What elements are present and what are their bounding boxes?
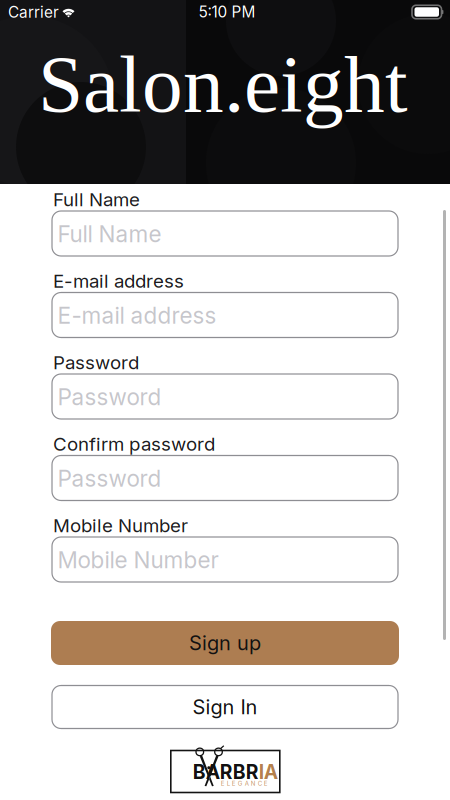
staticText: E-mail address (57, 302, 216, 329)
staticText: Sign In (192, 695, 257, 719)
staticText: Salon.eight (38, 39, 408, 129)
staticText: Full Name (53, 188, 140, 211)
staticText: BARBR (193, 760, 259, 784)
staticText: Password (57, 465, 161, 492)
staticText: Confirm password (53, 433, 215, 455)
staticText: Sign up (189, 631, 261, 655)
staticText: IA (259, 760, 278, 784)
staticText: 5:10 PM (198, 3, 255, 21)
staticText: E-mail address (53, 270, 184, 292)
staticText: Full Name (57, 220, 161, 248)
button[interactable]: Sign In (52, 685, 398, 728)
button[interactable]: Sign up (51, 621, 399, 665)
staticText: Password (57, 383, 161, 411)
staticText: Carrier (8, 3, 59, 22)
staticText: E L E G A N C E (221, 780, 268, 787)
staticText: Mobile Number (53, 514, 188, 537)
staticText: Password (53, 351, 139, 374)
staticText: Mobile Number (57, 546, 218, 574)
